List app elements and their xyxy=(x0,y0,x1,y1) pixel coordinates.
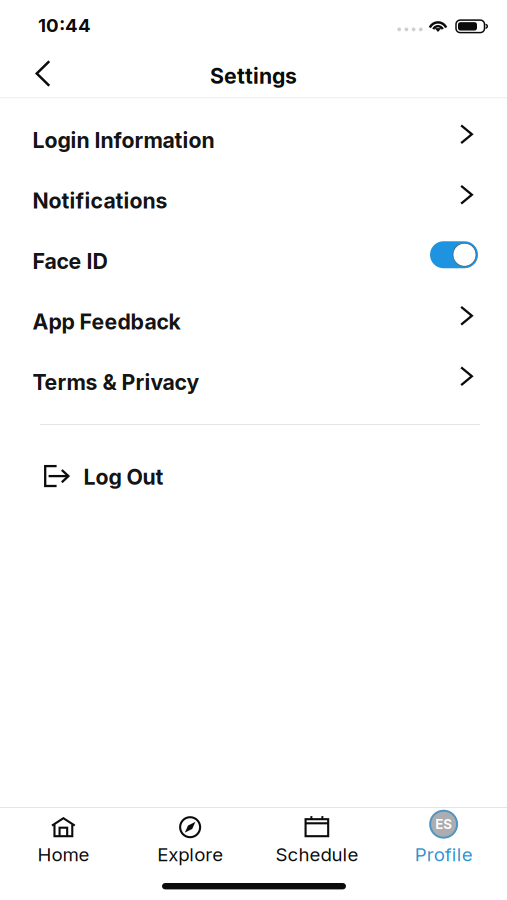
button[interactable]: App Feedback xyxy=(0,291,507,352)
staticText: Settings xyxy=(210,63,297,89)
staticText: Explore xyxy=(157,843,223,866)
staticText: Log Out xyxy=(83,464,163,490)
staticText: Schedule xyxy=(275,843,358,866)
button[interactable]: Profile xyxy=(380,808,507,866)
staticText: 10:44 xyxy=(38,14,91,37)
staticText: ES xyxy=(435,816,452,832)
button[interactable]: Schedule xyxy=(253,808,380,866)
staticText: Login Information xyxy=(32,127,214,153)
button[interactable]: Terms & Privacy xyxy=(0,352,507,412)
button[interactable]: Login Information xyxy=(0,110,507,170)
button[interactable]: Explore xyxy=(127,808,254,866)
button[interactable]: Back xyxy=(17,49,69,97)
staticText: Notifications xyxy=(32,188,167,214)
staticText: App Feedback xyxy=(32,309,180,335)
staticText: Terms & Privacy xyxy=(32,369,199,395)
button[interactable]: Log Out xyxy=(0,448,507,504)
button[interactable]: Face ID xyxy=(0,231,507,291)
staticText: Face ID xyxy=(32,248,107,274)
staticText: Home xyxy=(37,843,89,866)
button[interactable]: Home xyxy=(0,808,127,866)
staticText: Profile xyxy=(415,843,473,866)
button[interactable]: Notifications xyxy=(0,170,507,231)
